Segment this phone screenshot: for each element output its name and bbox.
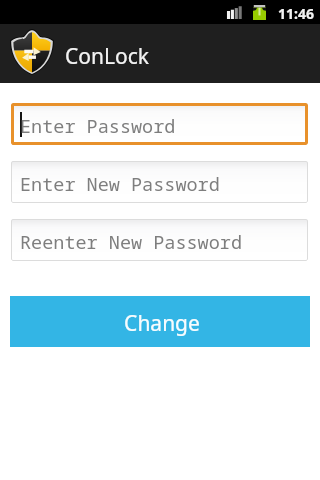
staticText: Reenter New Password	[20, 229, 243, 254]
button[interactable]: Enter Password	[11, 103, 308, 145]
staticText: Change	[124, 309, 200, 338]
button[interactable]: ConLock home	[0, 24, 59, 83]
button[interactable]: Change	[10, 296, 310, 347]
staticText: ConLock	[65, 42, 149, 71]
staticText: Enter New Password	[20, 171, 220, 196]
staticText: 11:46	[278, 4, 314, 23]
button[interactable]: Enter New Password	[11, 161, 308, 203]
button[interactable]: Reenter New Password	[11, 219, 308, 261]
staticText: Enter Password	[20, 113, 176, 138]
